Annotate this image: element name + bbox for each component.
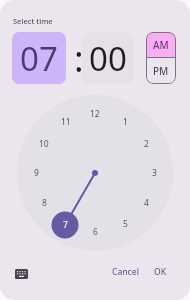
button[interactable]: 07 [12, 32, 66, 84]
button[interactable]: 12 [86, 105, 104, 123]
staticText: 9 [34, 167, 39, 179]
staticText: 6 [93, 226, 98, 238]
staticText: 1 [123, 116, 128, 128]
button[interactable]: 4 [137, 194, 155, 212]
staticText: Select time [13, 16, 53, 26]
staticText: 8 [42, 197, 47, 209]
button[interactable]: PM [146, 58, 176, 84]
button[interactable]: 3 [145, 164, 163, 182]
staticText: 5 [123, 218, 128, 230]
button[interactable]: Cancel [106, 262, 144, 282]
button[interactable]: 9 [27, 164, 45, 182]
staticText: 00 [89, 36, 127, 81]
button[interactable] [10, 264, 32, 284]
staticText: 07 [20, 36, 58, 81]
staticText: Cancel [112, 266, 139, 278]
button[interactable]: 11 [57, 113, 75, 131]
staticText: 4 [144, 197, 149, 209]
button[interactable]: AM [146, 32, 176, 57]
button[interactable]: 1 [116, 113, 134, 131]
button[interactable]: 10 [35, 135, 53, 153]
staticText: PM [153, 64, 169, 78]
staticText: 2 [144, 138, 149, 150]
staticText: AM [153, 38, 169, 52]
button[interactable]: 00 [82, 32, 133, 84]
button[interactable]: 6 [86, 223, 104, 241]
button[interactable]: 8 [35, 194, 53, 212]
button[interactable]: 2 [137, 135, 155, 153]
staticText: 3 [152, 167, 157, 179]
staticText: 12 [90, 108, 100, 120]
staticText: OK [154, 266, 167, 278]
staticText: : [74, 34, 84, 83]
button[interactable]: OK [148, 262, 172, 282]
button[interactable]: 7 [56, 216, 74, 234]
staticText: 10 [39, 138, 49, 150]
staticText: 7 [63, 219, 68, 231]
staticText: 11 [61, 116, 71, 128]
button[interactable]: 5 [116, 215, 134, 233]
